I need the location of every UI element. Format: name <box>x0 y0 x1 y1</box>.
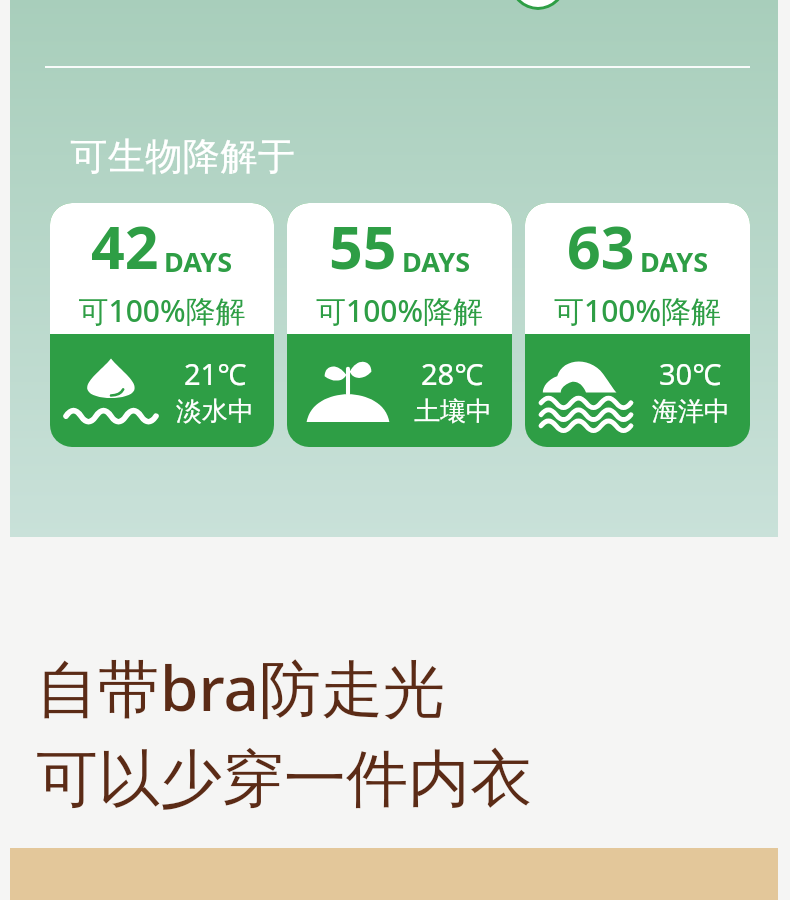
staticText: 63 <box>567 206 635 286</box>
staticText: 可生物降解于 <box>70 133 295 180</box>
staticText: 可100%降解 <box>525 290 750 331</box>
button[interactable]: 42 <box>50 203 274 447</box>
staticText: DAYS <box>640 243 709 280</box>
staticText: 28℃ <box>421 354 484 393</box>
staticText: 55 <box>329 206 397 286</box>
button[interactable]: 63 <box>525 203 750 447</box>
other: 淡水中 <box>66 354 156 428</box>
staticText: DAYS <box>164 243 233 280</box>
staticText: 可100%降解 <box>50 290 274 331</box>
staticText: 淡水中 <box>176 395 254 428</box>
staticText: 42 <box>91 206 159 286</box>
staticText: 可以少穿一件内衣 <box>36 740 532 818</box>
other: 海洋中 <box>541 354 631 428</box>
other: 土壤中 <box>303 354 393 428</box>
staticText: DAYS <box>402 243 471 280</box>
staticText: 可100%降解 <box>287 290 512 331</box>
staticText: 自带bra防走光 <box>36 645 445 730</box>
staticText: 海洋中 <box>652 395 730 428</box>
staticText: 21℃ <box>184 354 247 393</box>
button[interactable]: 55 <box>287 203 512 447</box>
staticText: 土壤中 <box>414 395 492 428</box>
staticText: 30℃ <box>659 354 722 393</box>
